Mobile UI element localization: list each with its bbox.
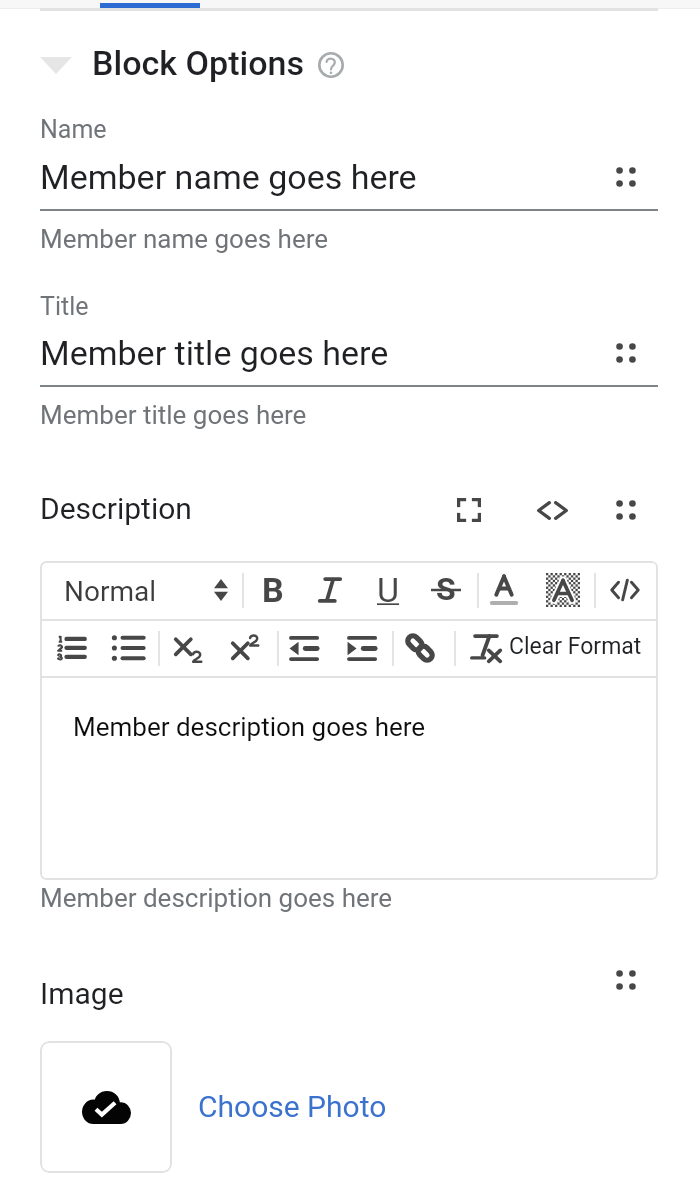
staticText: B <box>262 570 284 610</box>
button[interactable]: Bulleted list <box>99 619 157 677</box>
button[interactable]: Superscript <box>216 619 274 677</box>
staticText: Choose Photo <box>198 1089 387 1124</box>
button[interactable]: Underline <box>359 561 417 619</box>
staticText: Member name goes here <box>40 224 329 254</box>
staticText: Block Options <box>92 43 305 83</box>
staticText: Normal <box>64 575 157 608</box>
button[interactable]: Subscript <box>159 619 217 677</box>
staticText: S <box>436 570 456 608</box>
staticText: U <box>377 570 400 610</box>
staticText: Image <box>40 976 124 1011</box>
button[interactable]: Text color <box>475 561 533 619</box>
button[interactable]: Indent <box>332 619 390 677</box>
button[interactable]: Italic <box>301 561 359 619</box>
button[interactable]: Outdent <box>274 619 332 677</box>
button[interactable]: Insert link <box>391 619 449 677</box>
button[interactable]: Strikethrough <box>417 561 475 619</box>
button[interactable]: Paragraph style Normal <box>46 561 236 619</box>
button[interactable]: Code view <box>531 489 573 531</box>
button[interactable]: Reorder Name <box>605 156 647 198</box>
button[interactable]: Numbered list <box>42 619 100 677</box>
button[interactable]: Fullscreen <box>448 489 490 531</box>
button[interactable]: Highlight color <box>534 561 592 619</box>
staticText: Title <box>40 292 89 321</box>
button[interactable]: Source code <box>596 561 654 619</box>
staticText: Member title goes here <box>40 400 307 430</box>
button[interactable]: Current photo <box>40 1041 172 1173</box>
staticText: Member description goes here <box>40 883 393 913</box>
staticText: Description <box>40 491 192 526</box>
button[interactable]: Reorder Description <box>605 489 647 531</box>
staticText: Member title goes here <box>40 333 389 373</box>
staticText: Member description goes here <box>73 712 426 742</box>
button[interactable]: Choose Photo <box>190 1086 396 1128</box>
staticText: Name <box>40 115 107 144</box>
button[interactable]: Reorder Image <box>605 959 647 1001</box>
button[interactable]: Reorder Title <box>605 332 647 374</box>
button[interactable]: Clear Format <box>460 619 658 676</box>
staticText: Member name goes here <box>40 157 417 197</box>
button[interactable]: Bold <box>244 561 302 619</box>
button[interactable]: Collapse section <box>34 48 78 82</box>
button[interactable]: Help <box>314 48 347 81</box>
staticText: Clear Format <box>509 633 642 660</box>
